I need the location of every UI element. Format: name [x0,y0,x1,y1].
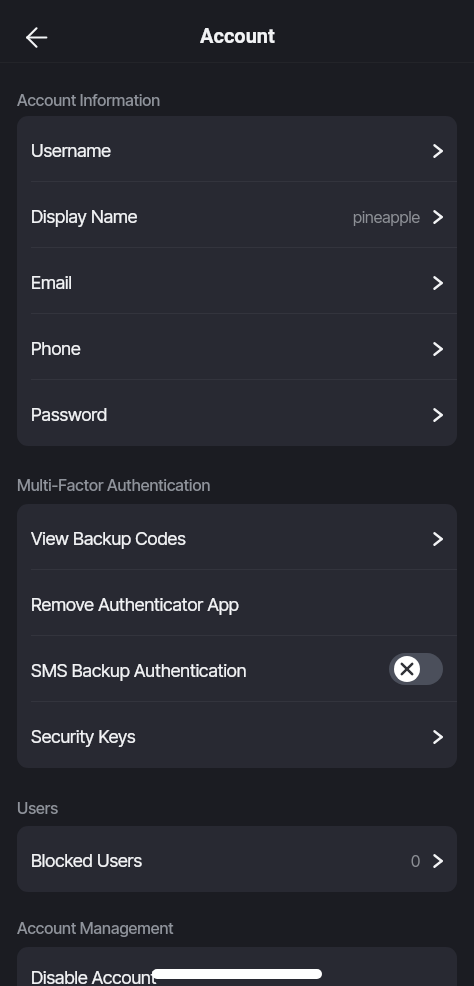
button[interactable]: Remove Authenticator App [17,570,457,636]
button[interactable]: Email [17,248,457,314]
staticText: SMS Backup Authentication [31,660,247,682]
button[interactable]: Display Name [17,182,457,248]
staticText: Email [31,272,72,294]
staticText: Account Management [17,918,174,937]
button[interactable]: Phone [17,314,457,380]
button[interactable]: Back [14,15,58,59]
staticText: 0 [411,851,421,870]
staticText: View Backup Codes [31,528,186,550]
staticText: Users [17,798,59,817]
staticText: Phone [31,338,81,360]
staticText: Display Name [31,206,138,228]
button[interactable]: SMS Backup Authentication [17,636,457,702]
staticText: Password [31,404,108,426]
staticText: Account Information [17,90,161,109]
button[interactable]: View Backup Codes [17,504,457,570]
button[interactable]: SMS Backup Authentication toggle, off [389,653,443,685]
button[interactable]: Username [17,116,457,182]
staticText: Account [200,24,275,47]
staticText: Security Keys [31,726,136,748]
staticText: Multi-Factor Authentication [17,475,211,494]
staticText: pineapple [353,207,421,226]
staticText: Remove Authenticator App [31,594,239,616]
staticText: Disable Account [31,967,157,986]
button[interactable]: Security Keys [17,702,457,768]
staticText: Blocked Users [31,850,142,872]
staticText: Username [31,140,111,162]
button[interactable]: Disable Account [17,947,457,986]
button[interactable]: Blocked Users [17,826,457,892]
button[interactable]: Password [17,380,457,446]
